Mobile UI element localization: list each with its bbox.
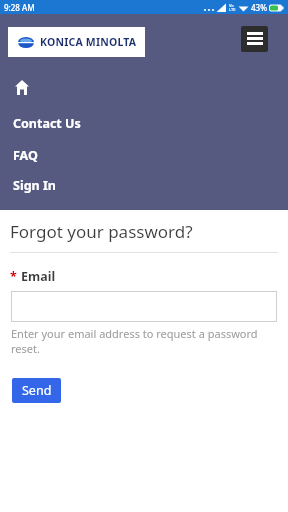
staticText: 43% — [251, 2, 267, 13]
button[interactable]: Contact Us — [0, 111, 288, 135]
staticText: FAQ — [13, 147, 38, 164]
button[interactable] — [241, 26, 268, 52]
staticText: Email — [21, 268, 56, 285]
staticText: * — [10, 268, 21, 285]
staticText: Vo LTE — [229, 3, 236, 12]
button[interactable]: KONICA MINOLTA — [8, 27, 145, 57]
staticText: Forgot your password? — [10, 220, 193, 243]
button[interactable]: Sign In — [0, 173, 288, 197]
staticText: Sign In — [13, 177, 56, 194]
staticText: 9:28 AM — [4, 2, 35, 13]
button[interactable] — [10, 75, 34, 99]
staticText: KONICA MINOLTA — [40, 35, 137, 49]
button[interactable] — [11, 291, 277, 322]
button[interactable]: FAQ — [0, 143, 288, 167]
staticText: Enter your email address to request a pa… — [11, 326, 274, 356]
staticText: Send — [22, 382, 52, 399]
staticText: Contact Us — [13, 115, 81, 132]
button[interactable]: Send — [12, 378, 61, 403]
